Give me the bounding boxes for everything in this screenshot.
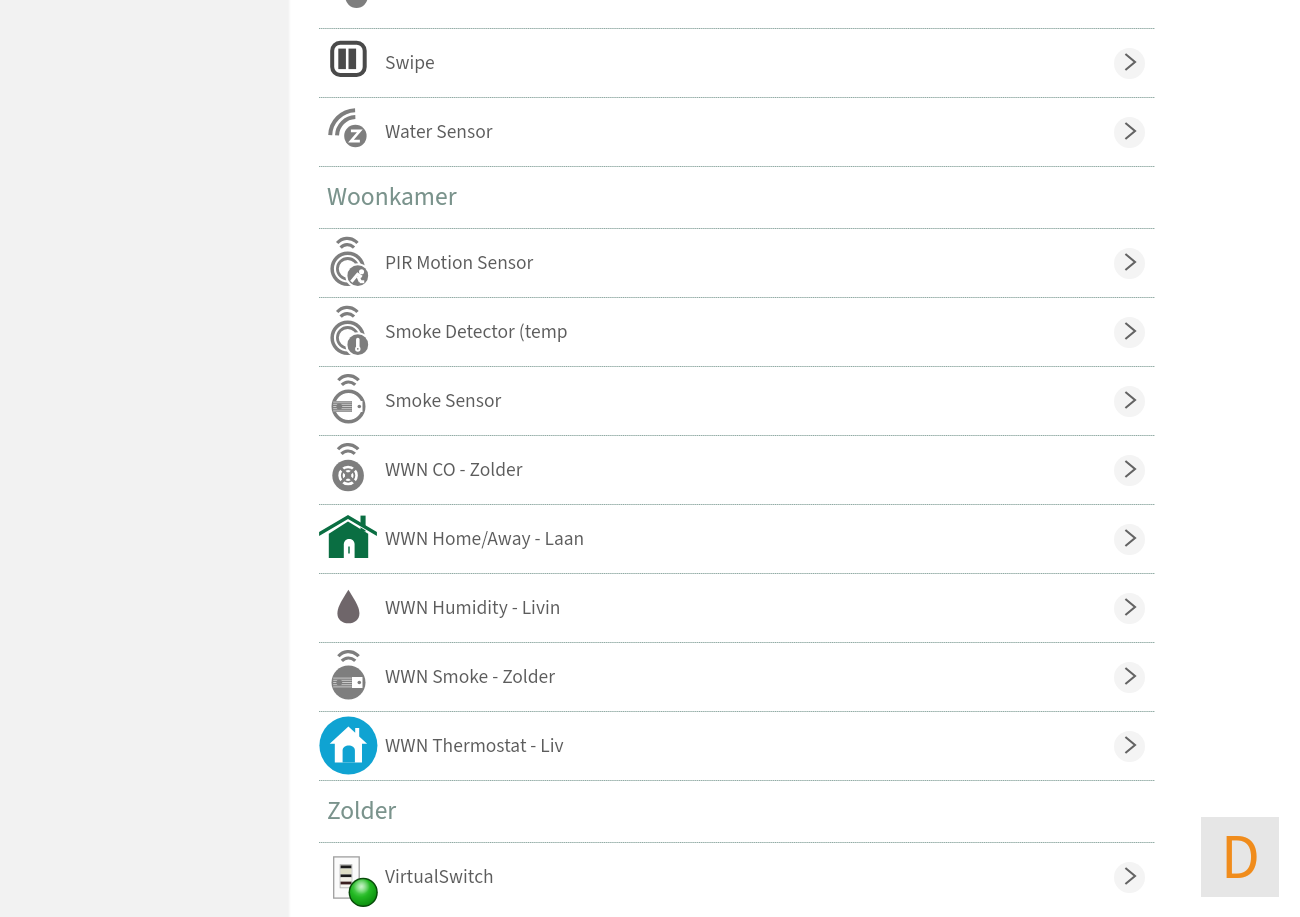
staticText: Swipe [385,49,435,77]
staticText: Smoke Detector (temp [385,318,568,346]
button[interactable]: Open PIR Motion Sensor [1114,248,1145,279]
button[interactable]: Open WWN Thermostat - Liv [1114,731,1145,762]
button[interactable]: WWN Home/Away - Laan [289,505,1300,573]
button[interactable]: Smoke Sensor [289,367,1300,435]
button[interactable]: WWN CO - Zolder [289,436,1300,504]
button[interactable]: Open WWN Smoke - Zolder [1114,662,1145,693]
button[interactable]: Smoke Detector (temp [289,298,1300,366]
staticText: Smoke Sensor [385,387,502,415]
staticText: WWN Humidity - Livin [385,594,561,622]
button[interactable]: WWN Humidity - Livin [289,574,1300,642]
button[interactable]: Open Smoke Sensor [1114,386,1145,417]
staticText: PIR Motion Sensor [385,249,534,277]
button[interactable]: VirtualSwitch [289,843,1300,911]
button[interactable]: Section index D [1201,817,1279,897]
staticText: Zolder [327,793,397,829]
button[interactable]: Open WWN Home/Away - Laan [1114,524,1145,555]
staticText: WWN Thermostat - Liv [385,732,564,760]
button[interactable]: Open Water Sensor [1114,117,1145,148]
staticText: VirtualSwitch [385,863,494,891]
staticText: D [1221,813,1260,893]
staticText: WWN Home/Away - Laan [385,525,585,553]
staticText: WWN Smoke - Zolder [385,663,556,691]
staticText: Water Sensor [385,118,493,146]
button[interactable]: WWN Thermostat - Liv [289,712,1300,780]
button[interactable]: Swipe [289,29,1300,97]
button[interactable]: Open Swipe [1114,48,1145,79]
button[interactable]: Open VirtualSwitch [1114,862,1145,893]
button[interactable]: Water Sensor [289,98,1300,166]
button[interactable]: Zolder [289,781,1300,842]
staticText: WWN CO - Zolder [385,456,523,484]
button[interactable]: Open WWN Humidity - Livin [1114,593,1145,624]
button[interactable]: PIR Motion Sensor [289,229,1300,297]
button[interactable]: WWN Smoke - Zolder [289,643,1300,711]
button[interactable]: Open Smoke Detector (temp [1114,317,1145,348]
button[interactable]: Woonkamer [289,167,1300,228]
button[interactable]: Open WWN CO - Zolder [1114,455,1145,486]
staticText: Woonkamer [327,179,457,215]
